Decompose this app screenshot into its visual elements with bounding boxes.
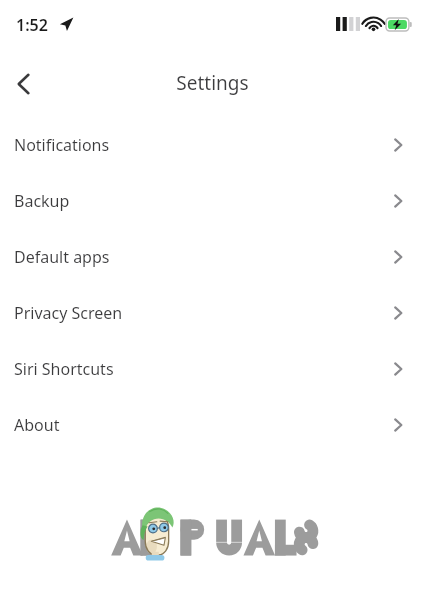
staticText: Siri Shortcuts bbox=[14, 358, 391, 380]
button[interactable]: Back bbox=[0, 60, 48, 108]
button[interactable]: Siri Shortcuts bbox=[0, 341, 425, 397]
button[interactable]: Notifications bbox=[0, 117, 425, 173]
button[interactable]: Backup bbox=[0, 173, 425, 229]
staticText: Settings bbox=[176, 70, 249, 96]
staticText: Default apps bbox=[14, 246, 391, 268]
staticText: Notifications bbox=[14, 134, 391, 156]
staticText: Backup bbox=[14, 190, 391, 212]
button[interactable]: About bbox=[0, 397, 425, 453]
staticText: About bbox=[14, 414, 391, 436]
staticText: 1:52 bbox=[16, 14, 48, 36]
staticText: Privacy Screen bbox=[14, 302, 391, 324]
button[interactable]: Default apps bbox=[0, 229, 425, 285]
button[interactable]: Privacy Screen bbox=[0, 285, 425, 341]
